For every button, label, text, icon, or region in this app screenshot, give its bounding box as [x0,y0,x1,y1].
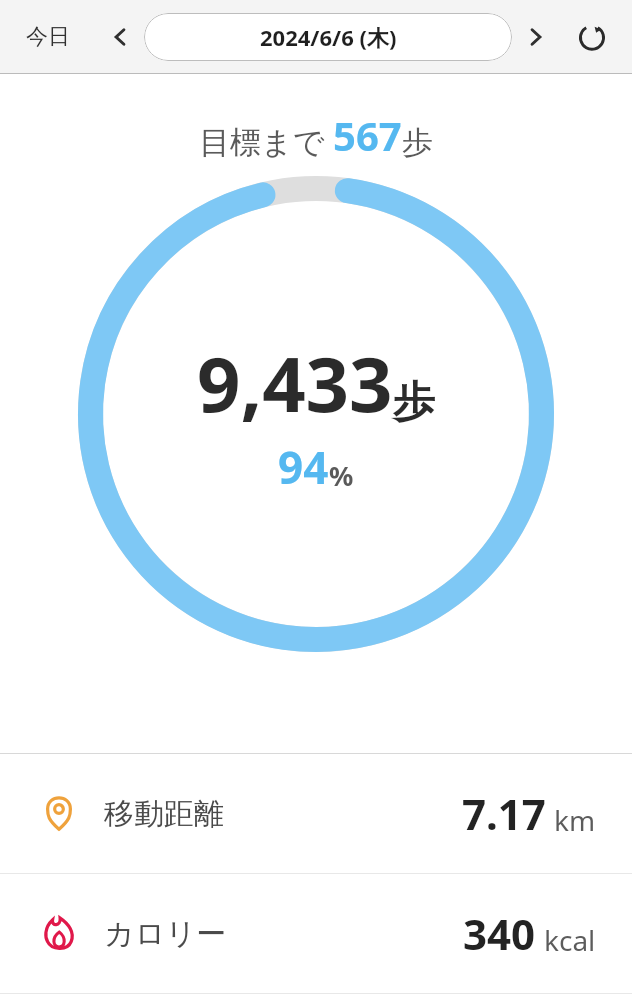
staticText: 7.17 [462,785,546,842]
staticText: 歩 [402,123,433,162]
staticText: 340 [463,905,536,962]
button[interactable]: 今日 [18,17,78,57]
staticText: 目標まで [199,120,333,162]
staticText: 94 [278,437,329,497]
staticText: 9,433 [197,331,393,435]
staticText: 今日 [26,23,70,51]
staticText: 2024/6/6 (木) [260,22,397,52]
staticText: 567 [333,108,402,162]
button[interactable]: 移動距離 [0,754,632,873]
button[interactable]: Previous day [100,17,140,57]
staticText: 移動距離 [104,795,224,833]
staticText: 歩 [393,376,435,429]
button[interactable]: Next day [516,17,556,57]
staticText: km [554,801,596,839]
button[interactable]: カロリー [0,874,632,993]
button[interactable]: 2024/6/6 (木) [144,13,512,61]
staticText: % [329,457,354,494]
button[interactable]: Refresh [570,15,614,59]
staticText: カロリー [104,915,227,953]
staticText: kcal [544,921,596,959]
